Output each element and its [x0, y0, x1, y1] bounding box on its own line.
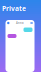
- staticText: Private: [2, 4, 26, 13]
- staticText: Anna: [16, 21, 24, 25]
